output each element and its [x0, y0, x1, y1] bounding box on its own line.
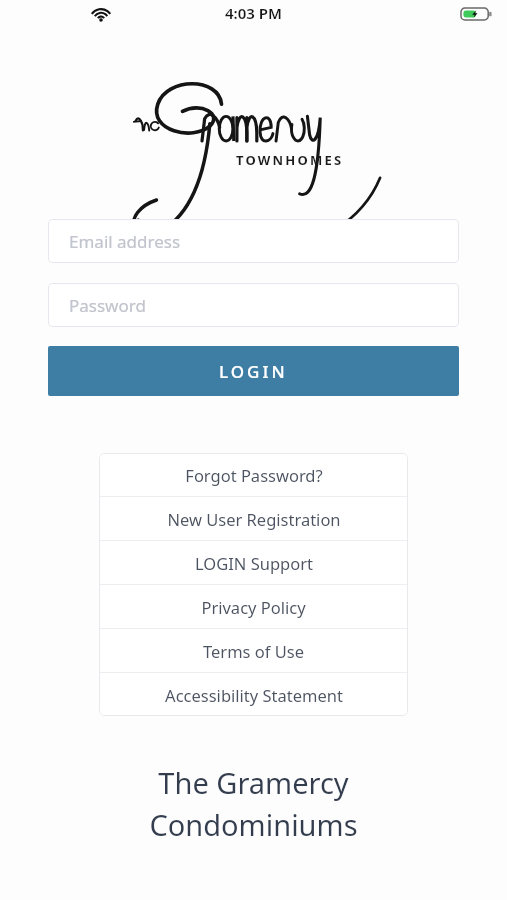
staticText: Email address	[69, 230, 181, 253]
staticText: Terms of Use	[203, 640, 304, 662]
button[interactable]: Password	[48, 283, 459, 327]
staticText: Privacy Policy	[201, 596, 306, 618]
button[interactable]: Terms of Use	[99, 629, 408, 672]
staticText: 4:03 PM	[225, 3, 282, 23]
button[interactable]: LOGIN	[48, 346, 459, 396]
staticText: LOGIN Support	[195, 552, 313, 574]
button[interactable]: Forgot Password?	[99, 453, 408, 496]
button[interactable]: LOGIN Support	[99, 541, 408, 584]
staticText: Condominiums	[149, 805, 358, 844]
staticText: Forgot Password?	[185, 464, 323, 486]
staticText: New User Registration	[167, 508, 341, 530]
staticText: TOWNHOMES	[236, 151, 344, 169]
button[interactable]: New User Registration	[99, 497, 408, 540]
staticText: Password	[69, 294, 146, 317]
button[interactable]: Privacy Policy	[99, 585, 408, 628]
button[interactable]: Email address	[48, 219, 459, 263]
staticText: The Gramercy	[158, 763, 349, 802]
button[interactable]: Accessibility Statement	[99, 673, 408, 716]
staticText: LOGIN	[219, 360, 288, 383]
staticText: Accessibility Statement	[165, 684, 343, 706]
